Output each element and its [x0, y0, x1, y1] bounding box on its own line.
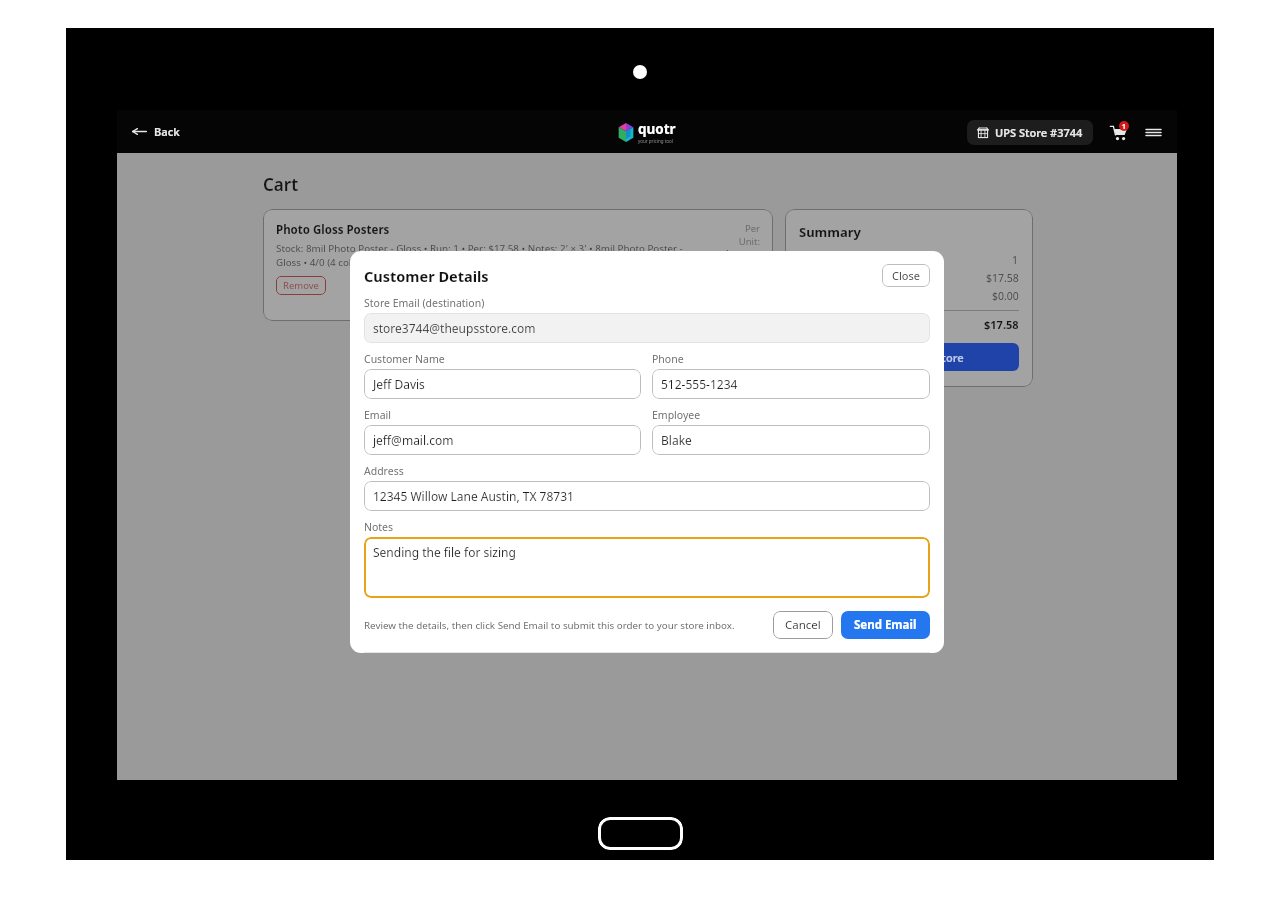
staticText: $0.00 — [992, 289, 1019, 303]
staticText: your pricing tool — [638, 138, 673, 144]
staticText: Unit: — [738, 235, 760, 248]
button[interactable]: quotr — [618, 120, 676, 144]
button[interactable]: Cancel — [773, 611, 833, 639]
staticText: Close — [892, 268, 920, 283]
button[interactable]: 512-555-1234 — [652, 369, 930, 399]
staticText: Employee — [652, 408, 701, 422]
staticText: 12345 Willow Lane Austin, TX 78731 — [373, 488, 574, 504]
staticText: Sending the file for sizing — [373, 544, 516, 560]
staticText: Email Order to Store — [855, 350, 964, 365]
button[interactable]: Menu — [1142, 121, 1164, 143]
staticText: Photo Gloss Posters — [276, 222, 390, 238]
staticText: 1 — [1122, 122, 1126, 131]
button[interactable]: Send Email — [841, 611, 930, 639]
staticText: Customer Details — [364, 266, 489, 286]
staticText: Jeff Davis — [373, 376, 425, 392]
staticText: Review the details, then click Send Emai… — [364, 619, 763, 632]
staticText: Blake — [661, 432, 692, 448]
button[interactable]: Back — [117, 116, 195, 147]
staticText: 512-555-1234 — [661, 376, 738, 392]
staticText: Email — [364, 408, 391, 422]
staticText: Stock: 8mil Photo Poster - Gloss • Run: … — [276, 242, 710, 269]
button[interactable]: Remove — [276, 276, 326, 295]
staticText: Cart — [263, 173, 299, 196]
staticText: Address — [364, 464, 404, 478]
staticText: Phone — [652, 352, 684, 366]
staticText: Per — [744, 222, 760, 235]
button[interactable]: store3744@theupsstore.com — [364, 313, 930, 343]
button[interactable]: Email Order to Store — [799, 343, 1019, 371]
staticText: Cancel — [785, 617, 821, 633]
button[interactable]: Blake — [652, 425, 930, 455]
staticText: 1 — [1012, 253, 1019, 267]
staticText: Remove — [283, 279, 319, 292]
button[interactable]: Jeff Davis — [364, 369, 641, 399]
staticText: Back — [154, 124, 180, 139]
staticText: Customer Name — [364, 352, 445, 366]
button[interactable]: Close — [882, 264, 930, 287]
button[interactable]: UPS Store #3744 — [967, 120, 1093, 145]
staticText: Notes — [364, 520, 394, 534]
button[interactable]: Sending the file for sizing — [364, 537, 930, 598]
staticText: $17.58 — [723, 248, 760, 264]
staticText: Send Email — [854, 617, 917, 633]
staticText: $17.58 — [984, 317, 1019, 332]
staticText: Summary — [799, 223, 861, 241]
button[interactable]: Home — [598, 817, 683, 850]
staticText: UPS Store #3744 — [995, 125, 1083, 140]
button[interactable]: 12345 Willow Lane Austin, TX 78731 — [364, 481, 930, 511]
staticText: quotr — [638, 120, 676, 138]
button[interactable]: Cart, 1 item — [1105, 119, 1131, 145]
staticText: jeff@mail.com — [373, 432, 454, 448]
staticText: Store Email (destination) — [364, 296, 485, 310]
button[interactable]: jeff@mail.com — [364, 425, 641, 455]
staticText: store3744@theupsstore.com — [373, 320, 536, 336]
staticText: $17.58 — [986, 271, 1019, 285]
